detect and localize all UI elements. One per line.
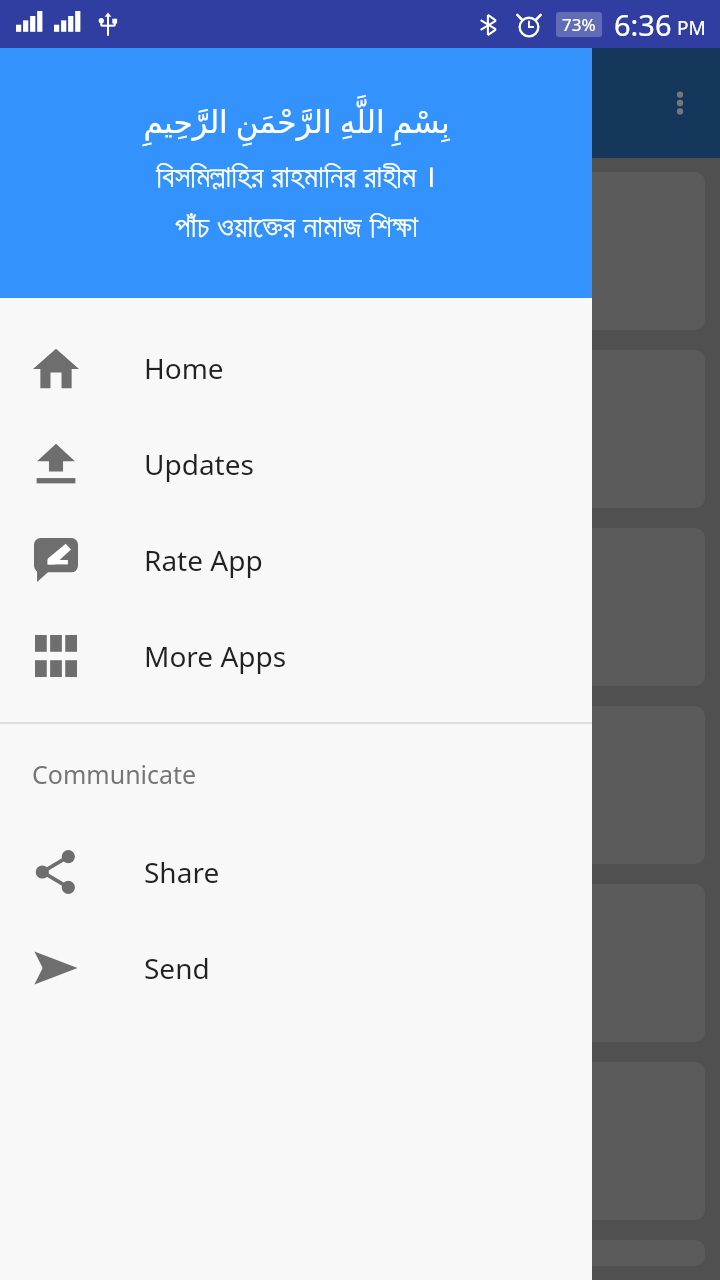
staticText: Share <box>144 853 220 891</box>
button[interactable]: নামাজের নিয়ম <box>15 1062 705 1220</box>
button[interactable]: Updates <box>0 416 592 512</box>
staticText: পাঁচ ওয়াক্তের নামাজ শিক্ষা <box>175 204 418 246</box>
staticText: Send <box>144 949 210 987</box>
button[interactable]: Home <box>0 320 592 416</box>
button[interactable]: More Apps <box>0 608 592 704</box>
button[interactable]: Send <box>0 920 592 1016</box>
button[interactable]: Share <box>0 824 592 920</box>
button[interactable]: নামাজের নিয়ম <box>15 350 705 508</box>
button[interactable]: নামাজের নিয়ম <box>15 884 705 1042</box>
staticText: 73% <box>562 13 596 36</box>
staticText: بِسْمِ اللَّهِ الرَّحْمَنِ الرَّحِيمِ <box>143 100 450 142</box>
button[interactable]: Rate App <box>0 512 592 608</box>
staticText: Home <box>144 349 224 387</box>
button[interactable]: নামাজের নিয়ম <box>15 706 705 864</box>
staticText: নামাজের নিয়ম <box>295 231 426 272</box>
staticText: PM <box>677 15 706 41</box>
button[interactable]: More options <box>652 75 708 131</box>
staticText: Updates <box>144 445 254 483</box>
button[interactable]: নামাজের নিয়ম <box>15 1240 705 1266</box>
staticText: বিসমিল্লাহির রাহমানির রাহীম । <box>156 154 436 196</box>
staticText: Communicate <box>32 757 197 791</box>
staticText: More Apps <box>144 637 287 675</box>
staticText: 6:36 <box>614 5 672 44</box>
button[interactable]: নামাজের নিয়ম <box>15 172 705 330</box>
button[interactable]: নামাজের নিয়ম <box>15 528 705 686</box>
staticText: Rate App <box>144 541 263 579</box>
